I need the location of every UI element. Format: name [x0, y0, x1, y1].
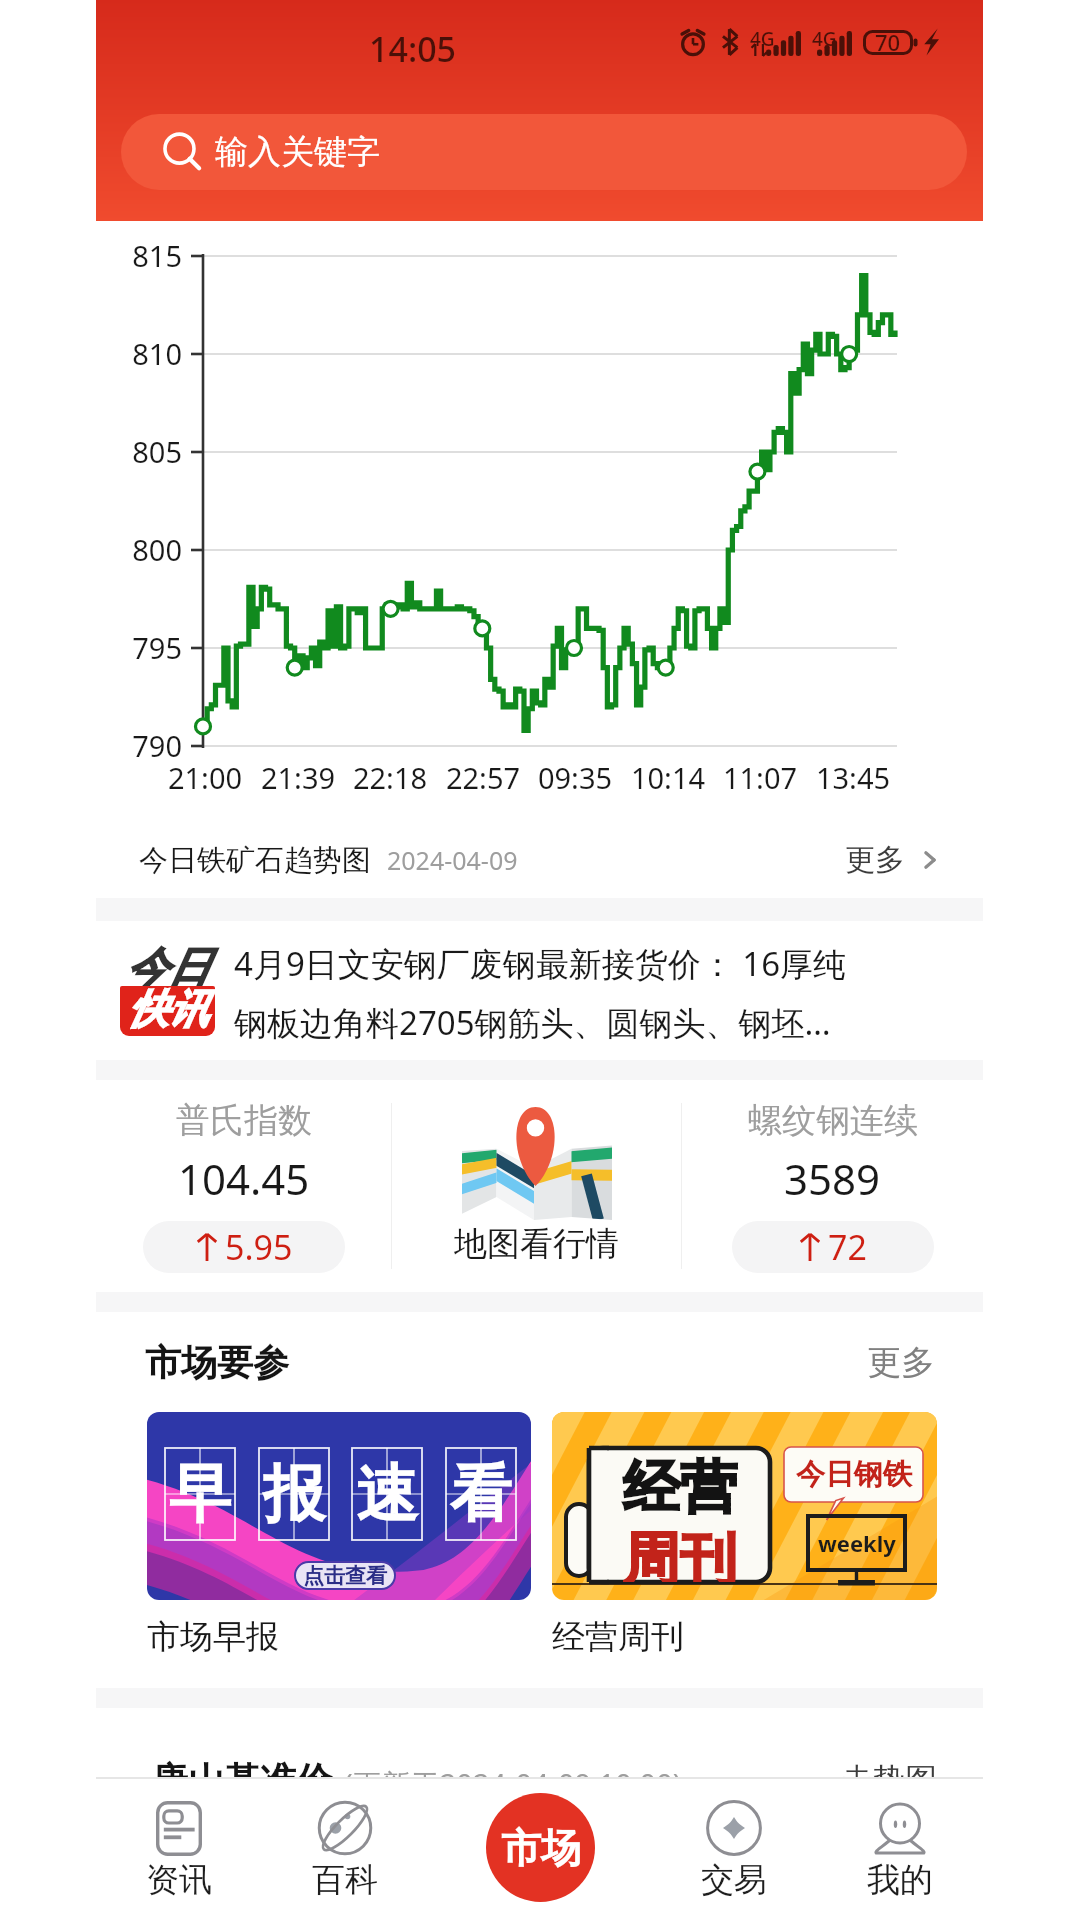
button[interactable]: Search	[121, 114, 967, 190]
staticText: 2024-04-09	[387, 843, 518, 877]
staticText: 点击查看	[303, 1563, 387, 1589]
staticText: 09:35	[525, 758, 625, 797]
button[interactable]: 地图看行情	[392, 1080, 681, 1292]
staticText: 70	[875, 27, 901, 57]
staticText: 快讯	[128, 986, 208, 1034]
staticText: 今日	[120, 942, 215, 995]
button[interactable]: 市场	[486, 1793, 595, 1902]
button[interactable]: 早	[147, 1412, 531, 1658]
staticText: 5.95	[225, 1224, 293, 1270]
staticText: 805	[82, 432, 182, 471]
staticText: 普氏指数	[176, 1099, 312, 1142]
staticText: 早	[169, 1455, 231, 1533]
staticText: 更多	[867, 1341, 935, 1384]
staticText: 14:05	[369, 26, 457, 72]
staticText: 周刊	[623, 1524, 737, 1582]
button[interactable]: 资讯	[96, 1777, 262, 1920]
button[interactable]: 今日铁矿石趋势图	[96, 822, 983, 898]
button[interactable]: 经营	[552, 1412, 937, 1658]
staticText: 经营	[623, 1452, 737, 1524]
staticText: 10:14	[618, 758, 718, 797]
button[interactable]: 螺纹钢连续	[682, 1080, 983, 1292]
staticText: 经营周刊	[552, 1616, 684, 1658]
staticText: 市场	[501, 1823, 581, 1873]
button[interactable]: 我的	[817, 1777, 983, 1920]
staticText: 790	[82, 726, 182, 765]
staticText: 唐山基准价	[152, 1758, 332, 1803]
staticText: 810	[82, 334, 182, 373]
staticText: 交易	[701, 1859, 767, 1901]
button[interactable]: 交易	[651, 1777, 817, 1920]
staticText: 我的	[867, 1859, 933, 1901]
staticText: 72	[828, 1224, 867, 1270]
staticText: 800	[82, 530, 182, 569]
staticText: 走势图	[841, 1760, 937, 1800]
staticText: 看	[450, 1455, 512, 1533]
staticText: 4G	[750, 26, 775, 52]
staticText: 市场要参	[145, 1340, 289, 1385]
staticText: 815	[82, 236, 182, 275]
staticText: weekly	[818, 1528, 896, 1558]
staticText: 地图看行情	[454, 1223, 619, 1265]
staticText: 11:07	[710, 758, 810, 797]
staticText: 钢板边角料2705钢筋头、圆钢头、钢坯…	[234, 1000, 831, 1045]
staticText: 资讯	[146, 1859, 212, 1901]
staticText: 速	[356, 1455, 418, 1533]
staticText: 4月9日文安钢厂废钢最新接货价： 16厚纯	[234, 941, 847, 986]
staticText: 百科	[312, 1859, 378, 1901]
staticText: 21:00	[155, 758, 255, 797]
button[interactable]: 百科	[262, 1777, 428, 1920]
staticText: 22:18	[340, 758, 440, 797]
staticText: 13:45	[803, 758, 903, 797]
staticText: 22:57	[433, 758, 533, 797]
staticText: 输入关键字	[215, 131, 380, 173]
staticText: (更新于2024-04-09 10:00)	[344, 1764, 682, 1804]
button[interactable]: 今日	[96, 921, 983, 1060]
staticText: 795	[82, 628, 182, 667]
staticText: 今日铁矿石趋势图	[139, 842, 371, 879]
staticText: 更多	[845, 841, 905, 879]
staticText: 市场早报	[147, 1616, 279, 1658]
staticText: 3589	[784, 1150, 881, 1207]
staticText: 4G	[812, 26, 837, 52]
staticText: 21:39	[248, 758, 348, 797]
button[interactable]: 普氏指数	[96, 1080, 391, 1292]
staticText: 今日钢铁	[796, 1456, 912, 1493]
staticText: 螺纹钢连续	[748, 1099, 918, 1142]
staticText: 报	[263, 1455, 325, 1533]
button[interactable]: 更多	[867, 1341, 935, 1384]
staticText: 104.45	[178, 1150, 310, 1207]
